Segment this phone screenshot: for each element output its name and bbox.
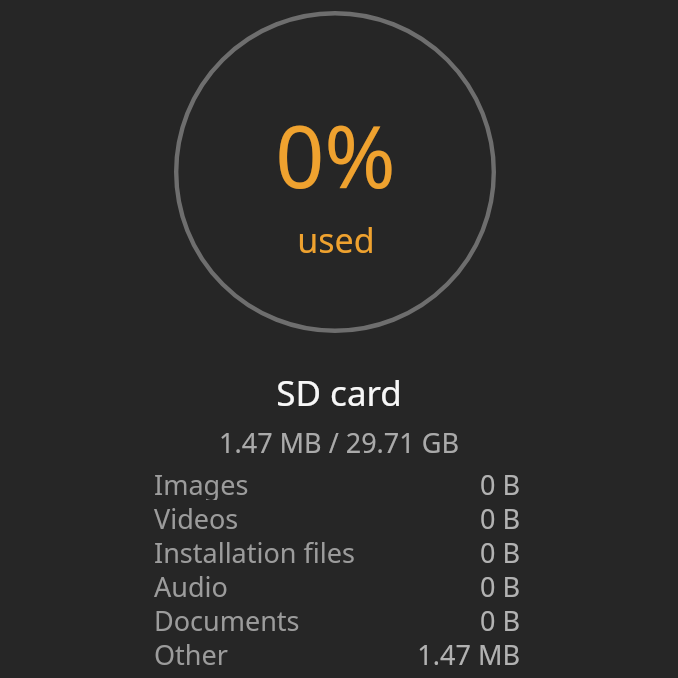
staticText: 0 B <box>479 534 520 568</box>
button[interactable]: Audio <box>154 568 520 602</box>
staticText: 0 B <box>479 466 520 500</box>
staticText: Audio <box>154 568 479 602</box>
staticText: 0 B <box>479 500 520 534</box>
staticText: 1.47 MB <box>417 636 520 670</box>
button[interactable]: Images <box>154 466 520 500</box>
button[interactable]: Storage used: 0 percent <box>174 11 496 333</box>
button[interactable]: Installation files <box>154 534 520 568</box>
button[interactable]: Other <box>154 636 520 670</box>
staticText: used <box>297 217 375 263</box>
staticText: Videos <box>154 500 479 534</box>
staticText: Installation files <box>154 534 479 568</box>
staticText: 0 B <box>479 568 520 602</box>
button[interactable]: Documents <box>154 602 520 636</box>
staticText: SD card <box>276 369 402 417</box>
button[interactable]: Videos <box>154 500 520 534</box>
staticText: 0% <box>275 96 396 213</box>
staticText: 0 B <box>479 602 520 636</box>
staticText: 1.47 MB / 29.71 GB <box>219 424 459 461</box>
staticText: Other <box>154 636 417 670</box>
staticText: Documents <box>154 602 479 636</box>
staticText: Images <box>154 466 479 500</box>
